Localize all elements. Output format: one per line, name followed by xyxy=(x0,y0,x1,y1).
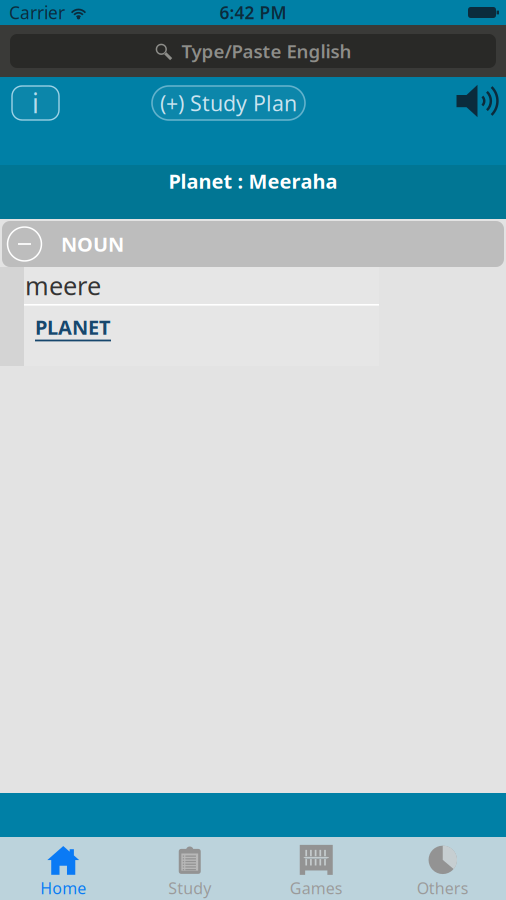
staticText: Type/Paste English xyxy=(171,39,351,63)
staticText: PLANET xyxy=(35,314,111,340)
button[interactable]: Speak xyxy=(456,84,499,118)
staticText: Games xyxy=(290,877,343,899)
button[interactable]: Others xyxy=(379,837,506,900)
staticText: Study xyxy=(168,877,211,899)
staticText: meere xyxy=(25,269,101,302)
button[interactable]: Games xyxy=(253,837,379,900)
staticText: Planet : Meeraha xyxy=(168,168,337,194)
staticText: Others xyxy=(417,877,469,899)
staticText: Carrier xyxy=(9,1,65,24)
staticText: NOUN xyxy=(61,231,124,257)
button[interactable]: Study xyxy=(126,837,253,900)
button[interactable]: Type or paste English xyxy=(0,25,506,77)
button[interactable]: Info xyxy=(12,86,59,120)
button[interactable]: Home xyxy=(0,837,126,900)
button[interactable]: PLANET xyxy=(24,306,111,349)
staticText: i xyxy=(32,85,39,121)
button[interactable]: Collapse NOUN xyxy=(0,219,506,267)
staticText: (+) Study Plan xyxy=(160,89,297,117)
button[interactable]: (+) Study Plan xyxy=(152,86,305,120)
staticText: 6:42 PM xyxy=(219,1,286,24)
staticText: Home xyxy=(40,877,86,899)
